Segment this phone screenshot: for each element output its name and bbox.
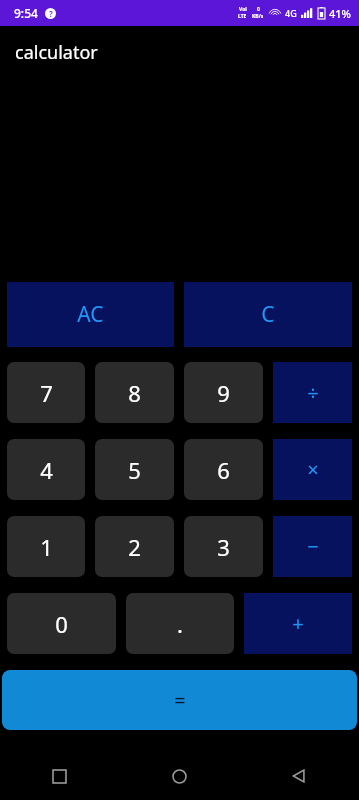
button[interactable]: Multiply	[273, 439, 352, 500]
staticText: LTE	[238, 13, 247, 20]
button[interactable]: Home	[119, 752, 239, 800]
staticText: 0	[257, 6, 260, 13]
staticText: 7	[40, 378, 53, 408]
staticText: 3	[217, 532, 230, 562]
button[interactable]: 5	[95, 439, 174, 500]
button[interactable]: C	[184, 282, 352, 347]
button[interactable]: 1	[7, 516, 85, 577]
staticText: 5	[128, 455, 141, 485]
button[interactable]: Subtract	[273, 516, 352, 577]
staticText: 4	[40, 455, 53, 485]
staticText: .	[177, 609, 183, 639]
button[interactable]: Equals	[2, 670, 357, 730]
staticText: 6	[217, 455, 230, 485]
button[interactable]: .	[126, 593, 234, 654]
staticText: =	[174, 687, 186, 714]
staticText: 8	[128, 378, 141, 408]
staticText: −	[307, 533, 319, 560]
staticText: Vol	[239, 6, 247, 13]
staticText: calculator	[15, 40, 98, 65]
button[interactable]: AC	[7, 282, 174, 347]
button[interactable]: Add	[244, 593, 352, 654]
button[interactable]: 3	[184, 516, 263, 577]
button[interactable]: 6	[184, 439, 263, 500]
staticText: 9	[217, 378, 230, 408]
staticText: 0	[55, 609, 68, 639]
staticText: C	[261, 300, 275, 329]
button[interactable]: 4	[7, 439, 85, 500]
staticText: 4G	[285, 7, 297, 19]
staticText: ?	[49, 8, 53, 19]
staticText: ÷	[307, 379, 319, 406]
button[interactable]: 2	[95, 516, 174, 577]
button[interactable]: Recents	[0, 752, 119, 800]
button[interactable]: Divide	[273, 362, 352, 423]
button[interactable]: 7	[7, 362, 85, 423]
staticText: AC	[77, 300, 104, 329]
button[interactable]: 9	[184, 362, 263, 423]
staticText: 9:54	[14, 5, 38, 21]
button[interactable]: Back	[239, 752, 359, 800]
staticText: 41%	[329, 6, 351, 21]
staticText: +	[292, 610, 304, 637]
staticText: 2	[128, 532, 141, 562]
staticText: KB/s	[252, 13, 264, 20]
button[interactable]: 0	[7, 593, 116, 654]
staticText: ×	[307, 456, 319, 483]
staticText: 1	[40, 532, 53, 562]
button[interactable]: 8	[95, 362, 174, 423]
